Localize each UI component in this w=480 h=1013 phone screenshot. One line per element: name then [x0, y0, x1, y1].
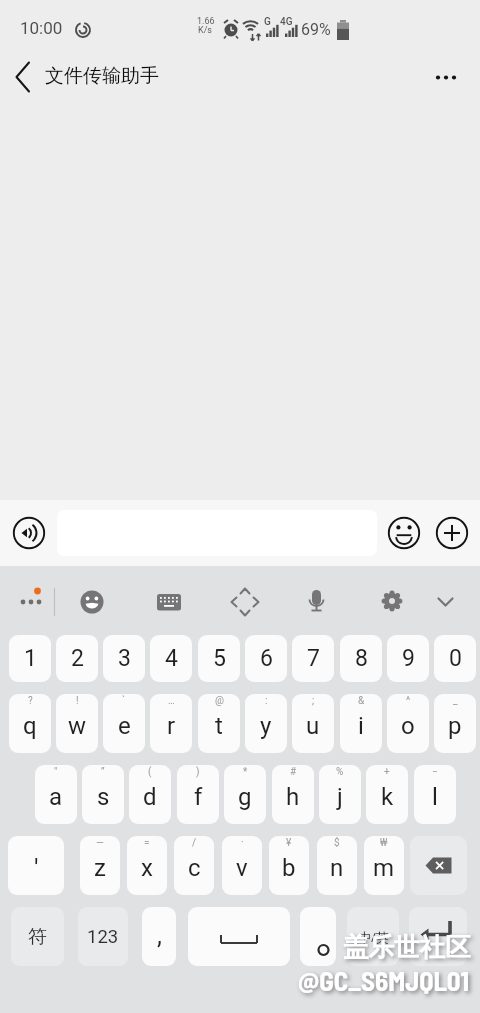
button[interactable]: [370, 580, 414, 622]
button[interactable]: [223, 580, 267, 622]
staticText: *: [243, 766, 248, 778]
button[interactable]: 7: [292, 635, 334, 682]
button[interactable]: [387, 516, 421, 550]
staticText: a: [49, 783, 63, 811]
button[interactable]: [8, 580, 52, 622]
staticText: c: [188, 854, 201, 882]
button[interactable]: [0, 48, 60, 104]
button[interactable]: 2: [56, 635, 98, 682]
button[interactable]: :: [245, 694, 287, 753]
button[interactable]: 符: [11, 907, 64, 966]
staticText: o: [401, 712, 415, 740]
button[interactable]: [188, 907, 290, 966]
staticText: ': [34, 853, 39, 883]
staticText: 1.66: [197, 16, 215, 27]
staticText: 7: [307, 645, 320, 672]
button[interactable]: [294, 580, 338, 622]
staticText: k: [381, 783, 394, 811]
staticText: 69%: [301, 20, 331, 39]
staticText: ”: [101, 766, 105, 778]
button[interactable]: =: [127, 836, 167, 895]
staticText: 4G: [280, 16, 293, 28]
staticText: 5: [213, 645, 226, 672]
button[interactable]: 6: [245, 635, 287, 682]
staticText: −: [432, 766, 438, 778]
staticText: @GC_S6MJQL01: [298, 964, 470, 996]
button[interactable]: 8: [340, 635, 382, 682]
button[interactable]: `: [103, 694, 145, 753]
staticText: t: [215, 712, 223, 740]
staticText: :: [265, 695, 268, 707]
button[interactable]: ,: [142, 907, 176, 966]
staticText: ·: [241, 837, 244, 849]
button[interactable]: ^: [387, 694, 429, 753]
button[interactable]: 123: [78, 907, 128, 966]
button[interactable]: 中/英: [347, 907, 399, 966]
button[interactable]: [70, 580, 114, 622]
button[interactable]: ?: [9, 694, 51, 753]
staticText: ^: [406, 695, 411, 707]
button[interactable]: +: [366, 765, 408, 824]
button[interactable]: 3: [103, 635, 145, 682]
button[interactable]: #: [272, 765, 314, 824]
staticText: y: [260, 712, 272, 740]
staticText: +: [384, 766, 390, 778]
button[interactable]: ·: [222, 836, 262, 895]
button[interactable]: [300, 907, 336, 966]
staticText: p: [448, 712, 462, 740]
staticText: ": [54, 766, 58, 778]
button[interactable]: ): [177, 765, 219, 824]
button[interactable]: ”: [82, 765, 124, 824]
button[interactable]: [409, 907, 467, 966]
staticText: `: [122, 695, 126, 707]
staticText: 符: [28, 925, 47, 949]
button[interactable]: _: [434, 694, 476, 753]
staticText: G: [264, 16, 271, 28]
staticText: —: [96, 837, 104, 849]
button[interactable]: …: [150, 694, 192, 753]
staticText: r: [167, 712, 176, 740]
staticText: 0: [449, 645, 462, 672]
button[interactable]: −: [414, 765, 456, 824]
staticText: !: [76, 695, 79, 707]
button[interactable]: 0: [434, 635, 476, 682]
button[interactable]: ': [8, 836, 64, 895]
button[interactable]: &: [340, 694, 382, 753]
button[interactable]: $: [317, 836, 357, 895]
button[interactable]: ¥: [269, 836, 309, 895]
staticText: ): [196, 766, 200, 778]
staticText: 8: [355, 645, 368, 672]
staticText: ₩: [380, 837, 388, 849]
button[interactable]: *: [224, 765, 266, 824]
button[interactable]: @: [198, 694, 240, 753]
button[interactable]: [147, 580, 191, 622]
staticText: g: [238, 783, 252, 811]
button[interactable]: 4: [150, 635, 192, 682]
button[interactable]: 1: [9, 635, 51, 682]
staticText: 2: [71, 645, 84, 672]
staticText: ¥: [286, 837, 292, 849]
staticText: f: [194, 783, 203, 811]
button[interactable]: /: [174, 836, 214, 895]
button[interactable]: ₩: [364, 836, 404, 895]
button[interactable]: (: [129, 765, 171, 824]
staticText: u: [306, 712, 320, 740]
button[interactable]: [410, 836, 467, 895]
button[interactable]: —: [80, 836, 120, 895]
staticText: ,: [157, 921, 162, 950]
staticText: l: [432, 783, 438, 811]
button[interactable]: [12, 516, 46, 550]
button[interactable]: ;: [292, 694, 334, 753]
button[interactable]: [423, 580, 467, 622]
staticText: m: [373, 854, 395, 882]
staticText: v: [236, 854, 248, 882]
button[interactable]: %: [319, 765, 361, 824]
button[interactable]: 5: [198, 635, 240, 682]
staticText: $: [334, 837, 340, 849]
button[interactable]: 9: [387, 635, 429, 682]
button[interactable]: ": [35, 765, 77, 824]
button[interactable]: !: [56, 694, 98, 753]
button[interactable]: [435, 516, 469, 550]
button[interactable]: [424, 56, 468, 96]
